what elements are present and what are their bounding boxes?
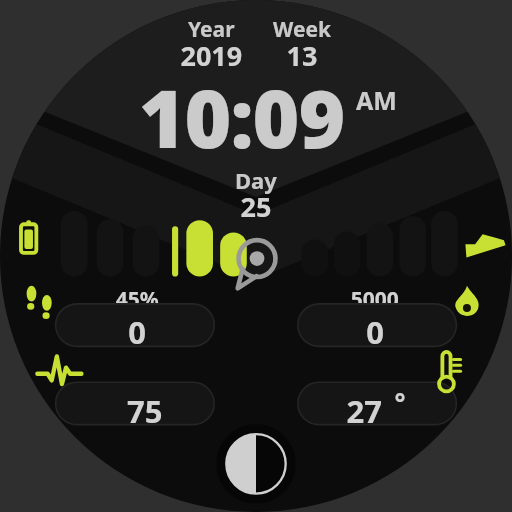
button[interactable]: Messages [234,236,278,280]
button[interactable]: Toggle contrast mode [225,430,287,492]
